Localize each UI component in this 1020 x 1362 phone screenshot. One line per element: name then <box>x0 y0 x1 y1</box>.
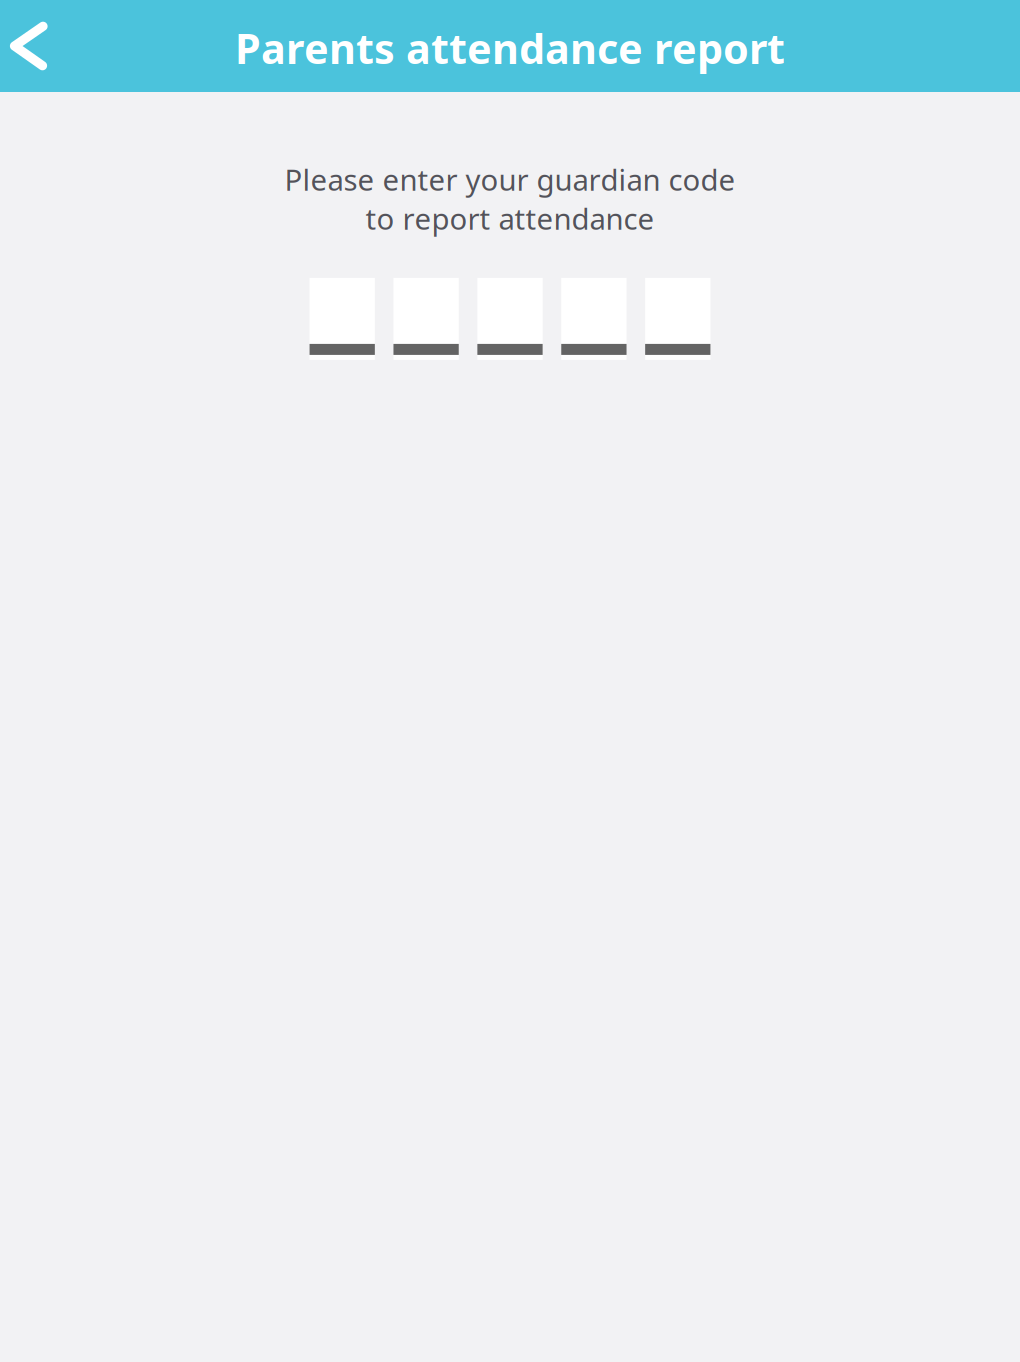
staticText: Please enter your guardian code <box>284 160 735 199</box>
button[interactable]: Guardian code digit 4 <box>561 278 626 360</box>
button[interactable]: Back <box>0 0 96 92</box>
staticText: Parents attendance report <box>235 21 785 75</box>
button[interactable]: Guardian code digit 5 <box>645 278 710 360</box>
button[interactable]: Guardian code digit 3 <box>477 278 543 360</box>
button[interactable]: Guardian code digit 1 <box>310 278 375 360</box>
staticText: to report attendance <box>365 199 654 238</box>
button[interactable]: Guardian code digit 2 <box>393 278 459 360</box>
